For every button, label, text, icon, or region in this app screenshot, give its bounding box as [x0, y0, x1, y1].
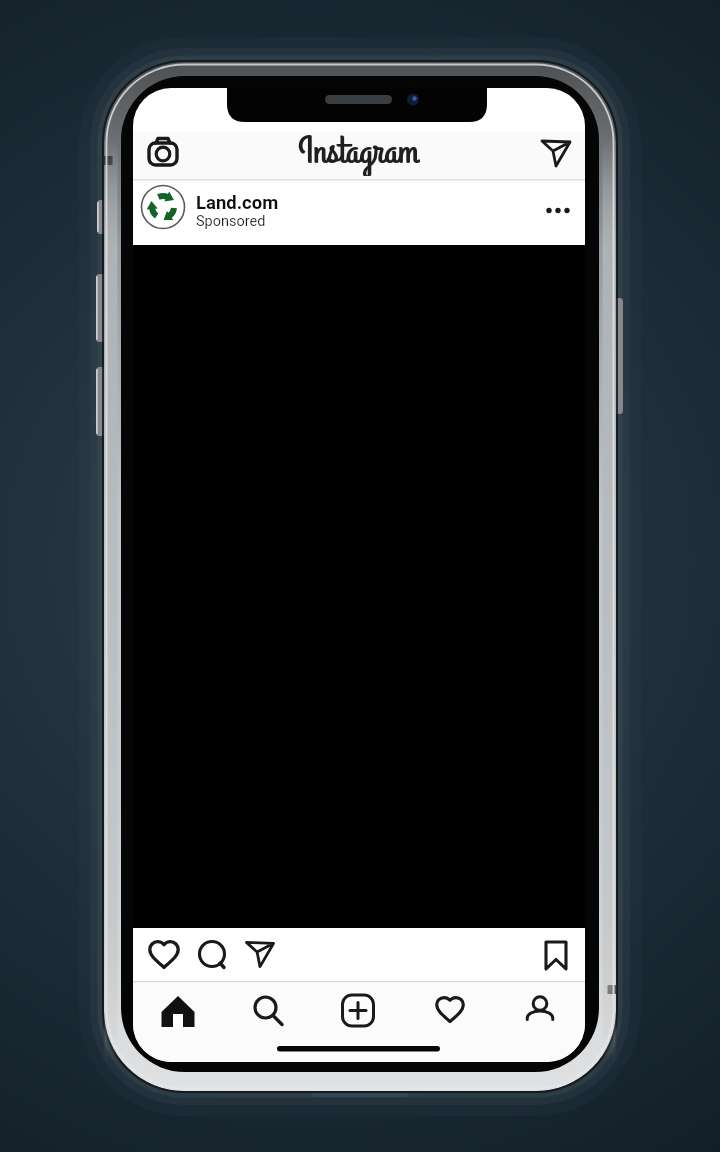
button[interactable]: Land.com — [139, 182, 439, 238]
button[interactable] — [242, 937, 282, 975]
button[interactable] — [194, 937, 232, 975]
button[interactable] — [314, 982, 404, 1062]
button[interactable] — [495, 982, 585, 1062]
button[interactable] — [224, 982, 314, 1062]
button[interactable] — [141, 132, 185, 172]
button[interactable] — [538, 937, 574, 975]
button[interactable] — [533, 191, 577, 229]
button[interactable] — [146, 937, 184, 975]
button[interactable] — [532, 132, 578, 174]
staticText: Sponsored — [196, 213, 266, 230]
staticText: Land.com — [196, 192, 279, 214]
staticText: Instagram — [298, 126, 419, 176]
button[interactable] — [404, 982, 495, 1062]
button[interactable] — [133, 982, 224, 1062]
staticText: Instagram — [299, 126, 420, 176]
